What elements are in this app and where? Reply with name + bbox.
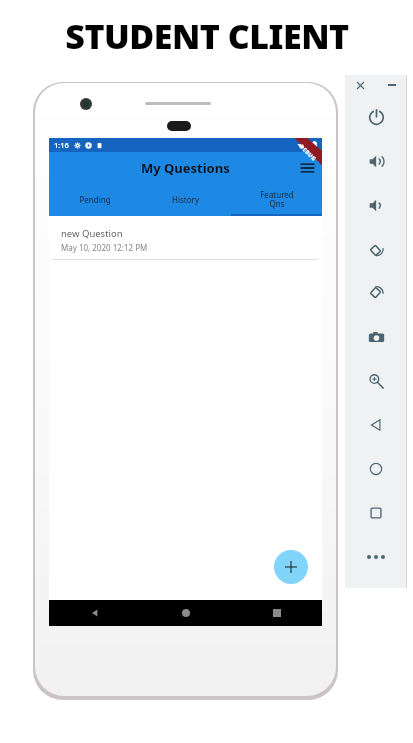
button[interactable]: Overview (345, 491, 407, 535)
button[interactable]: new Question (53, 220, 318, 260)
staticText: 1:16 (54, 140, 69, 150)
staticText: May 10, 2020 12:12 PM (61, 242, 148, 253)
button[interactable]: More (345, 535, 407, 579)
button[interactable]: Rotate right (345, 271, 407, 315)
button[interactable]: Minimize (376, 75, 407, 95)
button[interactable]: Pending (49, 183, 140, 216)
staticText: My Questions (141, 159, 230, 177)
button[interactable]: History (140, 183, 231, 216)
staticText: new Question (61, 227, 123, 240)
button[interactable]: Take screenshot (345, 315, 407, 359)
button[interactable]: Volume down (345, 183, 407, 227)
staticText: DEBUG (299, 143, 318, 162)
button[interactable]: Back (49, 600, 140, 626)
staticText: History (172, 194, 199, 205)
button[interactable]: Back (345, 403, 407, 447)
button[interactable]: Volume up (345, 139, 407, 183)
button[interactable]: Recent apps (231, 600, 322, 626)
button[interactable]: Featured Qns (231, 183, 322, 216)
button[interactable]: Home (140, 600, 231, 626)
button[interactable]: Open navigation menu (297, 158, 317, 178)
button[interactable]: Add question (274, 550, 308, 584)
button[interactable]: Rotate left (345, 227, 407, 271)
button[interactable]: Power (345, 95, 407, 139)
staticText: STUDENT CLIENT (65, 13, 349, 59)
staticText: Pending (79, 194, 111, 205)
staticText: Featured Qns (260, 189, 294, 210)
button[interactable]: Close (345, 75, 376, 95)
button[interactable]: Home (345, 447, 407, 491)
button[interactable]: Zoom (345, 359, 407, 403)
